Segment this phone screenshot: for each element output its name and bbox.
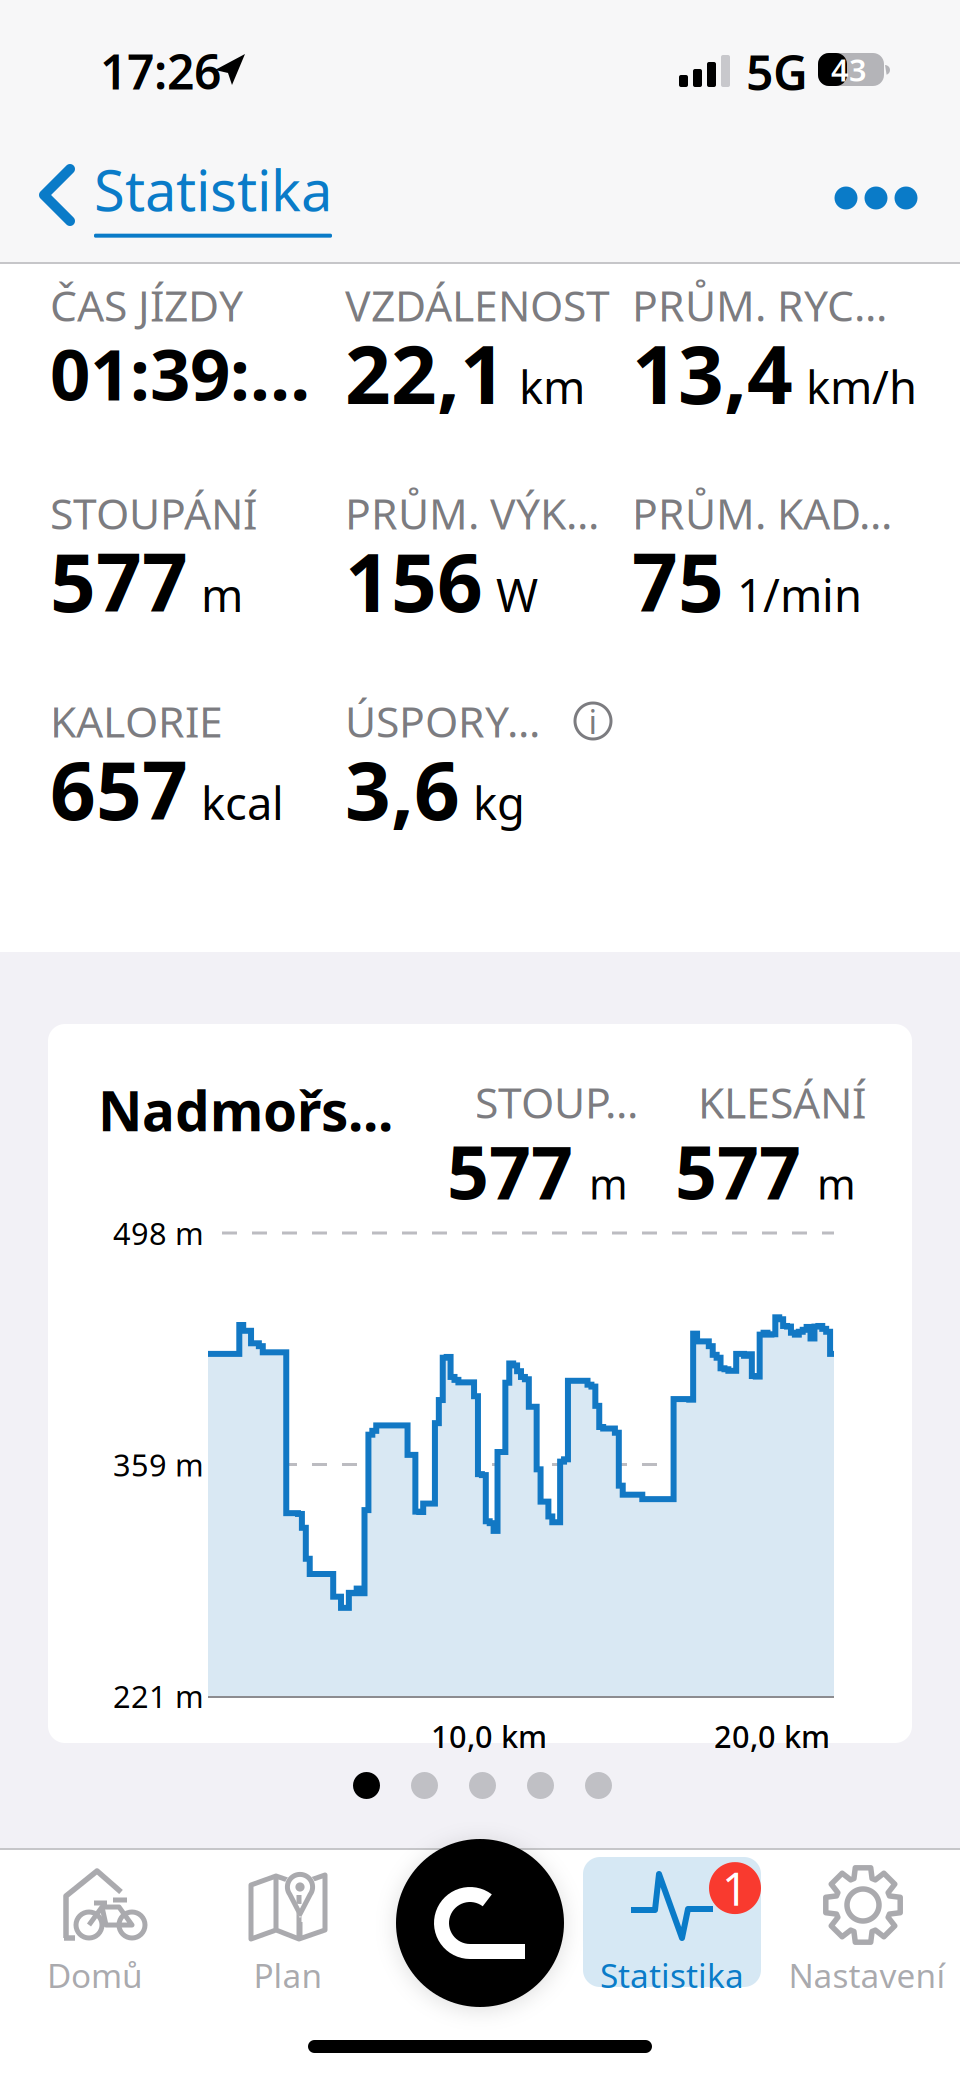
staticText: 22,1	[345, 320, 506, 426]
staticText: 359 m	[113, 1444, 204, 1485]
button[interactable]: More options	[820, 160, 932, 236]
staticText: KLESÁNÍ	[698, 1074, 866, 1130]
button[interactable]: Domů	[10, 1857, 180, 1987]
staticText: 3,6	[345, 736, 460, 842]
staticText: Statistika	[600, 1953, 744, 1997]
button[interactable]: Plan	[203, 1857, 373, 1987]
staticText: 10,0 km	[431, 1716, 547, 1756]
staticText: VZDÁLENOST	[345, 277, 610, 333]
button[interactable]: Statistika	[26, 136, 344, 254]
staticText: STOUP...	[475, 1074, 638, 1130]
staticText: Nastavení	[788, 1953, 945, 1997]
staticText: Statistika	[94, 152, 332, 227]
staticText: 577	[447, 1122, 573, 1220]
staticText: PRŮM. KAD...	[632, 485, 892, 541]
staticText: 156	[345, 528, 483, 634]
staticText: 13,4	[632, 320, 793, 426]
staticText: Plan	[253, 1953, 322, 1997]
staticText: 75	[632, 528, 724, 634]
button[interactable]: Start ride	[396, 1839, 564, 2007]
button[interactable]: Nastavení	[778, 1857, 956, 1987]
staticText: m	[817, 1156, 856, 1211]
staticText: STOUPÁNÍ	[50, 485, 257, 541]
staticText: 43	[831, 49, 867, 90]
staticText: PRŮM. VÝK...	[345, 485, 599, 541]
staticText: Nadmořs...	[98, 1074, 393, 1146]
staticText: 1/min	[737, 564, 862, 625]
staticText: km/h	[806, 356, 917, 417]
staticText: 17:26	[100, 39, 221, 103]
staticText: ČAS JÍZDY	[50, 277, 243, 333]
staticText: kg	[473, 772, 525, 833]
button[interactable]: Statistika	[583, 1857, 761, 1987]
staticText: 577	[675, 1122, 801, 1220]
staticText: 20,0 km	[714, 1716, 830, 1756]
staticText: W	[496, 564, 538, 625]
staticText: i	[588, 699, 597, 743]
staticText: km	[519, 356, 585, 417]
staticText: KALORIE	[50, 693, 223, 749]
staticText: 498 m	[113, 1213, 204, 1253]
staticText: 5G	[746, 40, 808, 104]
staticText: m	[589, 1156, 628, 1211]
staticText: 577	[50, 528, 188, 634]
staticText: PRŮM. RYC...	[632, 277, 887, 333]
staticText: 01:39:…	[50, 326, 310, 420]
staticText: m	[201, 564, 243, 625]
staticText: 657	[50, 736, 188, 842]
staticText: Domů	[47, 1953, 143, 1997]
staticText: 1	[722, 1858, 748, 1918]
staticText: 221 m	[113, 1676, 204, 1716]
staticText: ÚSPORY...	[345, 693, 540, 749]
staticText: kcal	[201, 772, 284, 833]
